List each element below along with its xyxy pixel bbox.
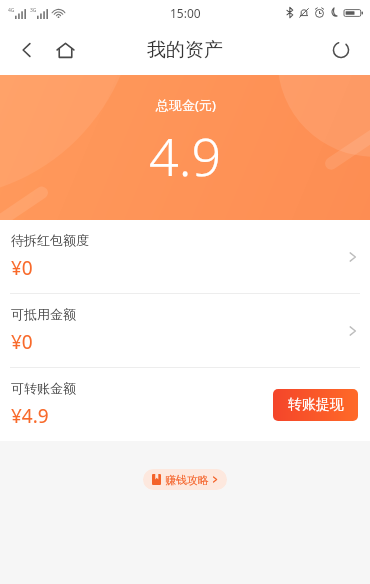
button[interactable]: 待拆红包额度 — [0, 220, 370, 293]
button[interactable]: Home — [49, 34, 81, 66]
staticText: 15:00 — [170, 5, 201, 21]
staticText: 4G — [8, 7, 15, 14]
staticText: 赚钱攻略 — [165, 473, 209, 487]
staticText: 转账提现 — [288, 396, 344, 414]
staticText: 总现金(元) — [156, 96, 216, 114]
button[interactable]: 转账提现 — [273, 389, 358, 421]
staticText: 可抵用金额 — [11, 306, 76, 322]
staticText: 我的资产 — [147, 38, 223, 62]
staticText: 4.9 — [149, 120, 222, 191]
staticText: ¥4.9 — [11, 403, 49, 429]
button[interactable]: 赚钱攻略 — [143, 469, 227, 490]
button[interactable]: 可抵用金额 — [0, 294, 370, 367]
staticText: 3G — [30, 7, 37, 14]
staticText: ¥0 — [11, 255, 33, 281]
staticText: ¥0 — [11, 329, 33, 355]
button[interactable]: Back — [11, 34, 43, 66]
button[interactable]: Refresh — [324, 33, 358, 67]
staticText: 可转账金额 — [11, 380, 76, 396]
button[interactable]: 可转账金额 — [0, 368, 370, 441]
staticText: 待拆红包额度 — [11, 232, 89, 248]
